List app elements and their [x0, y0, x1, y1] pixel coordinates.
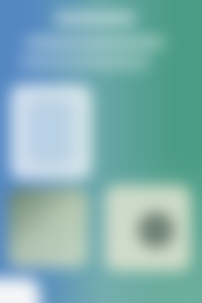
button[interactable]: Search	[25, 37, 165, 48]
button[interactable]	[10, 84, 92, 180]
button[interactable]	[105, 185, 191, 271]
button[interactable]: Nature photo	[8, 188, 88, 268]
button[interactable]: Filters	[20, 57, 150, 68]
